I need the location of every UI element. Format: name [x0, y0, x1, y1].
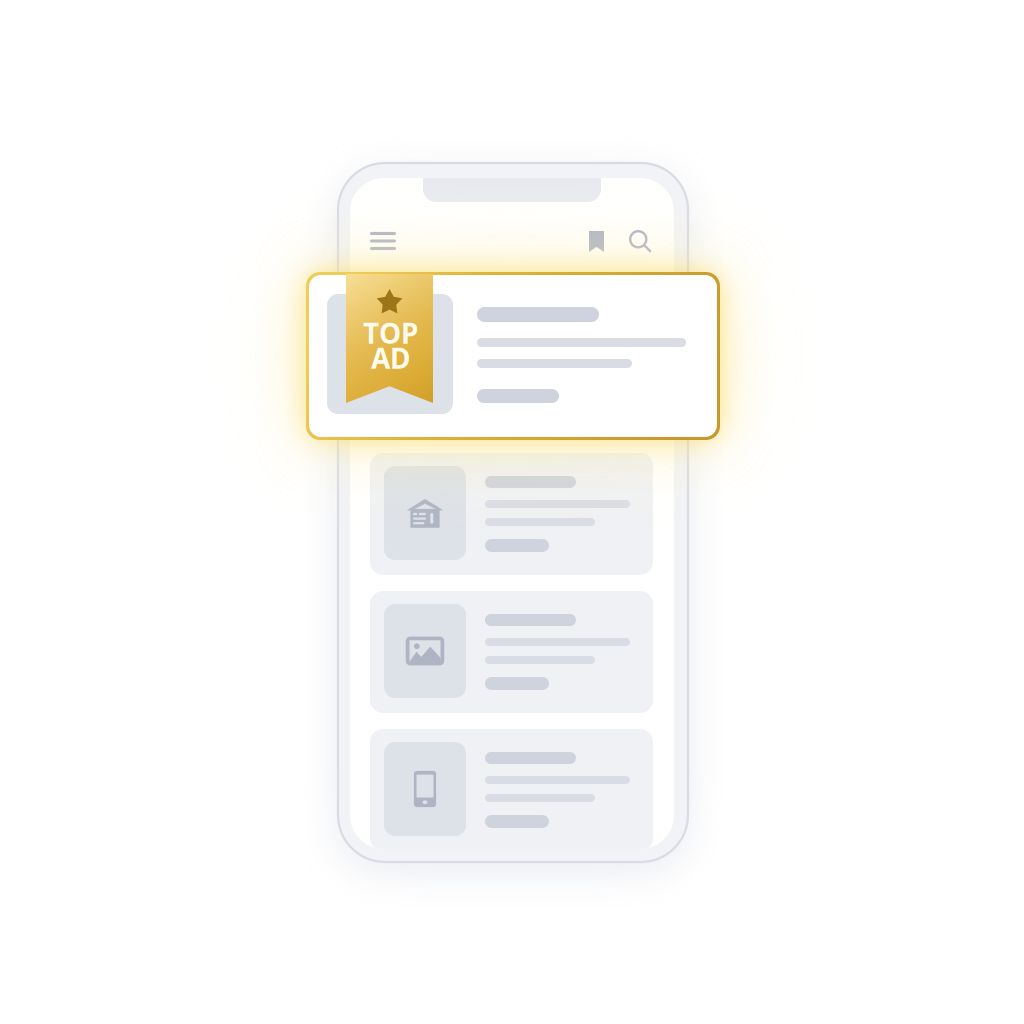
staticText: AD: [371, 339, 410, 377]
button[interactable]: Bookmarks: [589, 231, 604, 252]
button[interactable]: Menu: [370, 231, 396, 251]
button[interactable]: [370, 453, 653, 575]
button[interactable]: [370, 729, 653, 851]
staticText: TOP: [363, 314, 418, 352]
button[interactable]: TOP: [306, 272, 720, 440]
button[interactable]: Search: [629, 230, 653, 253]
button[interactable]: [370, 591, 653, 713]
